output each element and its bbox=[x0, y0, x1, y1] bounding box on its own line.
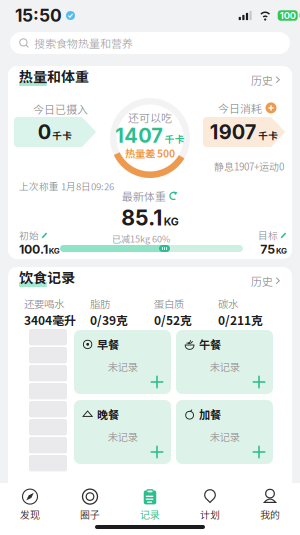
staticText: 15:50 bbox=[15, 5, 62, 26]
staticText: 未记录 bbox=[107, 359, 137, 374]
staticText: 千卡 bbox=[52, 128, 72, 142]
staticText: 搜索食物热量和营养 bbox=[34, 35, 133, 51]
staticText: 1407 bbox=[115, 123, 163, 147]
staticText: 0/52克 bbox=[154, 311, 192, 328]
staticText: 圈子 bbox=[80, 507, 100, 521]
staticText: 已减15kg 60% bbox=[112, 232, 170, 245]
staticText: 静息1907+运动0 bbox=[214, 159, 284, 173]
button[interactable]: 加餐 bbox=[176, 400, 273, 464]
button[interactable]: 晚餐 bbox=[74, 400, 171, 464]
staticText: 早餐 bbox=[97, 336, 119, 352]
staticText: KG bbox=[49, 246, 60, 256]
staticText: 碳水 bbox=[218, 296, 238, 311]
staticText: 100 bbox=[280, 10, 296, 21]
button[interactable]: 早餐 bbox=[74, 330, 171, 394]
staticText: 0/211克 bbox=[218, 311, 263, 328]
button[interactable]: 午餐 bbox=[176, 330, 273, 394]
staticText: 午餐 bbox=[199, 336, 221, 352]
staticText: 0 bbox=[38, 120, 51, 144]
staticText: 未记录 bbox=[209, 359, 239, 374]
button[interactable]: 搜索食物热量和营养 bbox=[10, 32, 290, 54]
staticText: 1907 bbox=[210, 120, 257, 144]
staticText: 还要喝水 bbox=[24, 296, 64, 311]
button[interactable]: 历史 bbox=[251, 74, 281, 86]
staticText: 热量和体重 bbox=[19, 66, 89, 86]
staticText: 千卡 bbox=[165, 131, 185, 145]
staticText: 0/39克 bbox=[90, 311, 128, 328]
staticText: 未记录 bbox=[107, 429, 137, 444]
staticText: 热量差 500 bbox=[125, 145, 175, 161]
staticText: 历史 bbox=[251, 273, 273, 289]
staticText: 计划 bbox=[200, 507, 220, 521]
staticText: 100.1 bbox=[19, 242, 48, 257]
staticText: 今日消耗 bbox=[218, 100, 262, 116]
staticText: KG bbox=[164, 215, 179, 228]
button[interactable]: 计划 bbox=[180, 488, 240, 522]
staticText: 上次称重 1月8日09:26 bbox=[19, 179, 114, 193]
button[interactable]: 记录 bbox=[120, 488, 180, 522]
button[interactable]: 历史 bbox=[251, 275, 281, 287]
button[interactable]: 圈子 bbox=[60, 488, 120, 522]
staticText: 未记录 bbox=[209, 429, 239, 444]
staticText: 千卡 bbox=[258, 128, 278, 142]
staticText: 发现 bbox=[20, 507, 40, 521]
staticText: 加餐 bbox=[199, 406, 221, 422]
staticText: 最新体重 bbox=[122, 188, 166, 204]
staticText: 还可以吃 bbox=[128, 109, 172, 125]
staticText: 记录 bbox=[140, 507, 160, 521]
staticText: 3404毫升 bbox=[24, 311, 76, 328]
staticText: 今日已摄入 bbox=[33, 101, 88, 117]
staticText: 75 bbox=[260, 242, 275, 257]
staticText: KG bbox=[276, 246, 287, 256]
staticText: 晚餐 bbox=[97, 406, 119, 422]
button[interactable]: 发现 bbox=[0, 488, 60, 522]
staticText: 初始 bbox=[19, 228, 39, 242]
staticText: 蛋白质 bbox=[154, 296, 184, 311]
button[interactable]: 我的 bbox=[240, 488, 300, 522]
staticText: 脂肪 bbox=[90, 296, 110, 311]
staticText: 我的 bbox=[260, 507, 280, 521]
staticText: 目标 bbox=[258, 228, 278, 242]
staticText: 85.1 bbox=[121, 205, 162, 231]
staticText: 饮食记录 bbox=[19, 267, 75, 287]
staticText: 历史 bbox=[251, 72, 273, 88]
